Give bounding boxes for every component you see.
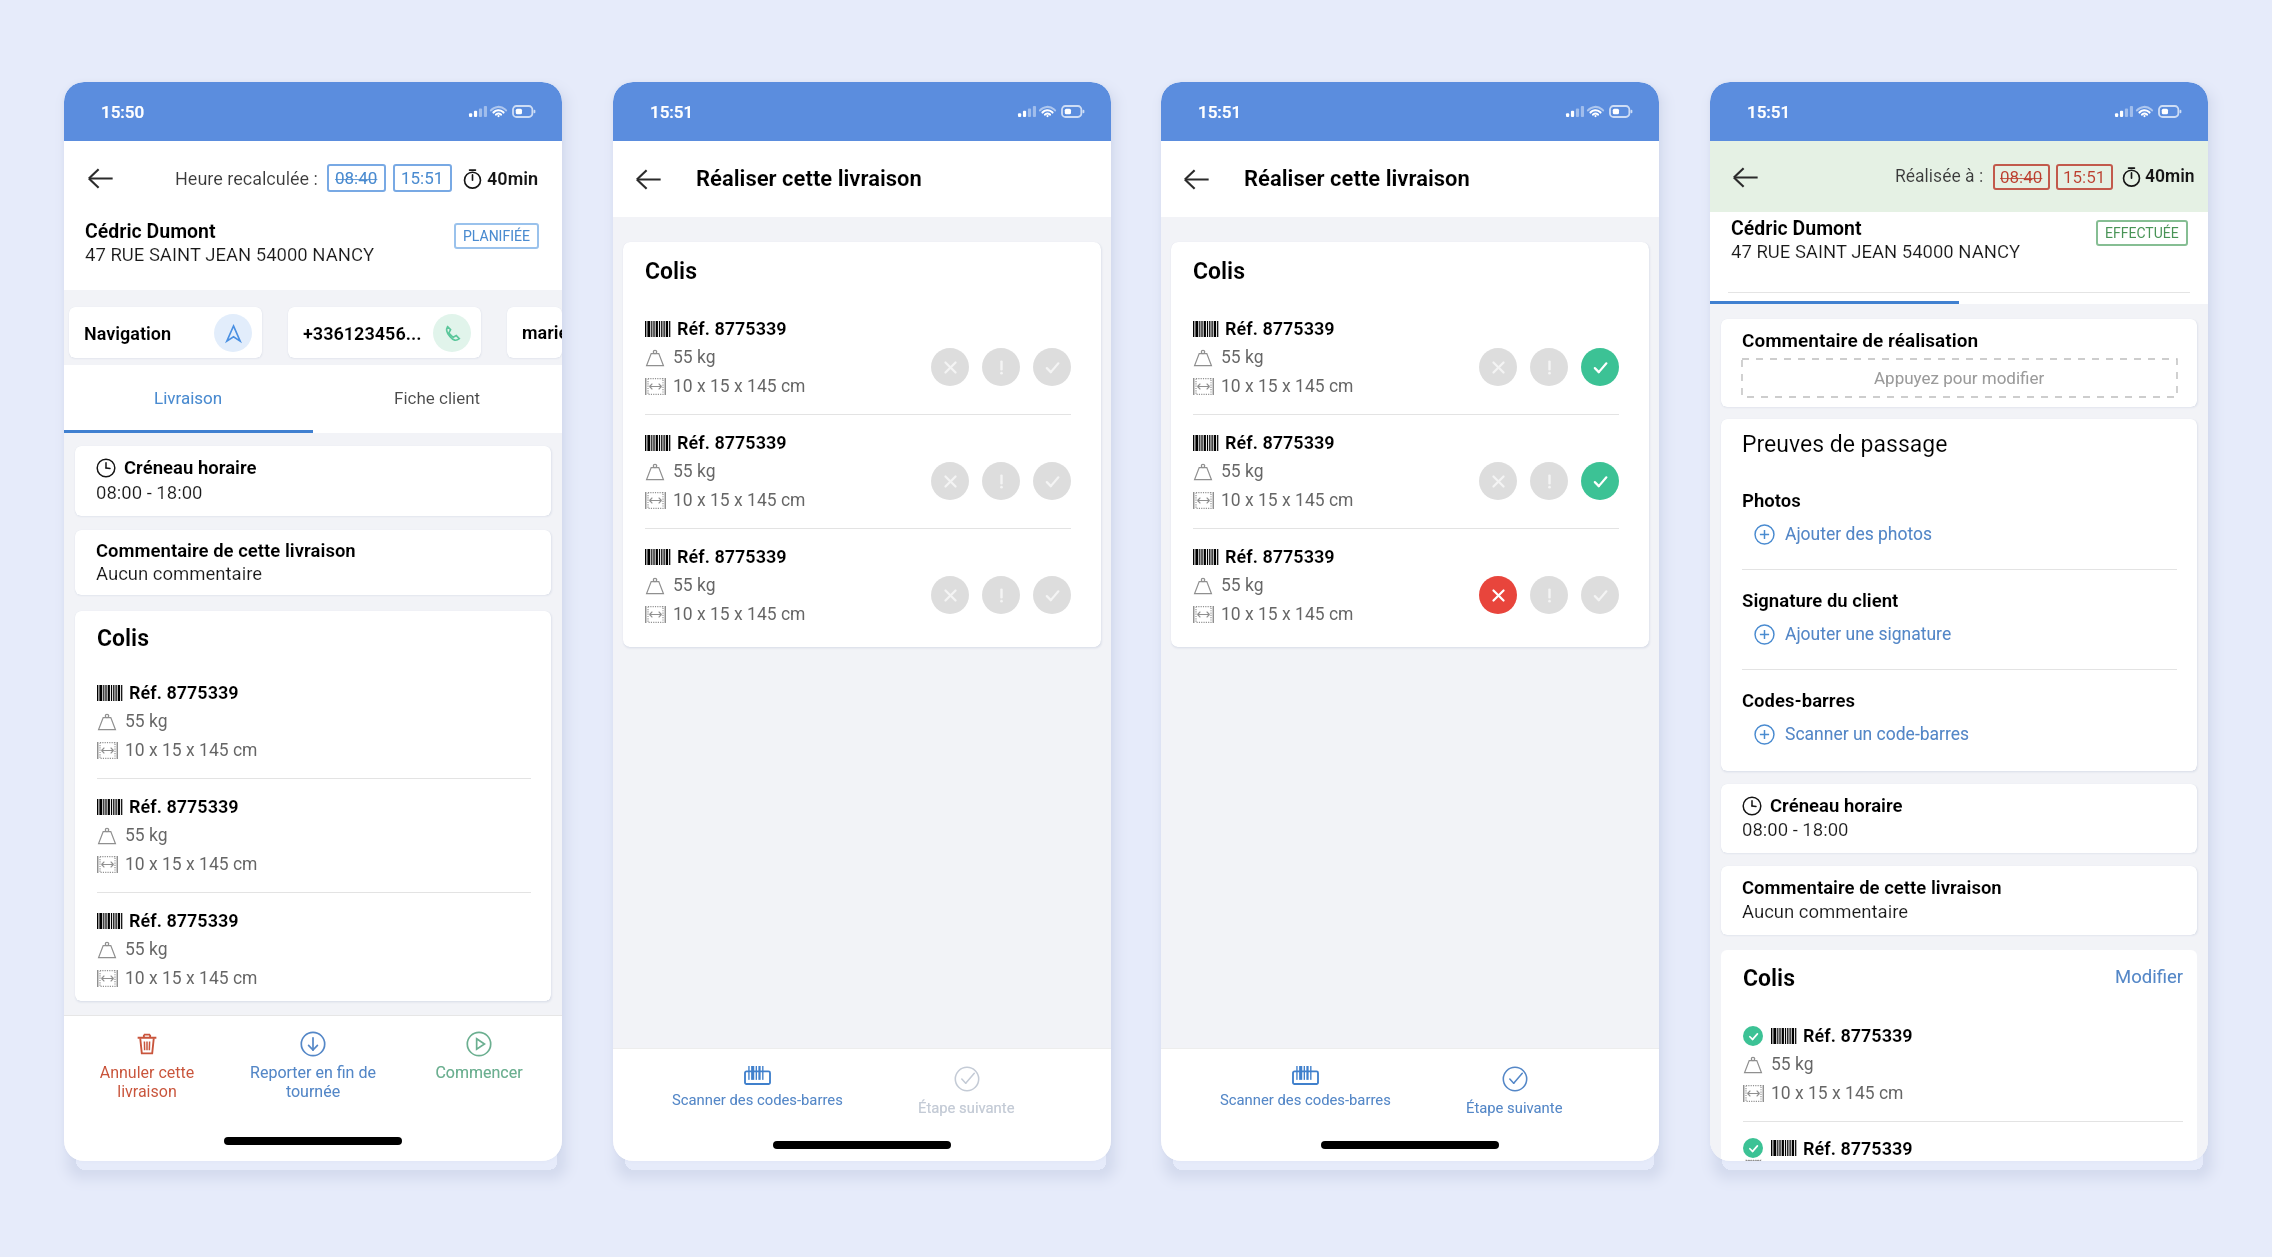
- staticText: Créneau horaire: [1770, 795, 1903, 817]
- button[interactable]: Probleme: [1530, 576, 1568, 614]
- button[interactable]: Navigation: [69, 307, 262, 358]
- staticText: Commencer: [400, 1063, 558, 1082]
- staticText: Ajouter une signature: [1785, 624, 1952, 645]
- staticText: Scanner des codes-barres: [672, 1091, 843, 1108]
- staticText: Réf. 8775339: [677, 432, 787, 453]
- staticText: Navigation: [84, 323, 214, 344]
- button[interactable]: Valider: [1033, 576, 1071, 614]
- button[interactable]: Refuser: [931, 576, 969, 614]
- staticText: 15:51: [650, 102, 694, 122]
- button[interactable]: Scanner des codes-barres: [653, 1066, 862, 1108]
- button[interactable]: Annuler cette livraison: [64, 1031, 230, 1101]
- staticText: EFFECTUÉE: [2105, 225, 2179, 241]
- staticText: 47 RUE SAINT JEAN 54000 NANCY: [85, 244, 375, 266]
- button[interactable]: Refuser: [1479, 348, 1517, 386]
- staticText: Scanner un code-barres: [1785, 724, 1970, 745]
- staticText: 10 x 15 x 145 cm: [1221, 376, 1354, 397]
- button[interactable]: Fiche client: [313, 365, 562, 430]
- button[interactable]: Probleme: [1530, 348, 1568, 386]
- staticText: Créneau horaire: [124, 457, 257, 479]
- button[interactable]: Retour: [625, 156, 671, 202]
- button[interactable]: Probleme: [1530, 462, 1568, 500]
- staticText: Étape suivante: [918, 1099, 1015, 1116]
- button[interactable]: Valider: [1581, 462, 1619, 500]
- staticText: Réf. 8775339: [129, 796, 239, 817]
- staticText: 40min: [2145, 166, 2195, 187]
- button[interactable]: Étape suivante: [1410, 1066, 1619, 1116]
- button[interactable]: Refuser: [931, 348, 969, 386]
- button[interactable]: marie: [507, 307, 562, 358]
- staticText: Réf. 8775339: [1225, 432, 1335, 453]
- button[interactable]: Probleme: [982, 462, 1020, 500]
- staticText: 55 kg: [125, 825, 168, 846]
- staticText: Modifier: [2115, 966, 2183, 988]
- staticText: Colis: [1193, 258, 1246, 285]
- button[interactable]: Scanner des codes-barres: [1201, 1066, 1410, 1108]
- button[interactable]: Retour: [1722, 154, 1768, 200]
- button[interactable]: Refuser: [931, 462, 969, 500]
- staticText: 55 kg: [1771, 1054, 1814, 1075]
- staticText: Reporter en fin de tournée: [234, 1063, 392, 1101]
- staticText: Cédric Dumont: [1731, 217, 1862, 240]
- staticText: 08:00 - 18:00: [96, 482, 203, 504]
- button[interactable]: Valider: [1581, 576, 1619, 614]
- staticText: 55 kg: [1221, 347, 1264, 368]
- button[interactable]: Étape suivante: [862, 1066, 1071, 1116]
- button[interactable]: Refuser: [1479, 462, 1517, 500]
- button[interactable]: Ajouter une signature: [1742, 622, 2177, 647]
- button[interactable]: Reporter en fin de tournée: [230, 1031, 396, 1101]
- button[interactable]: +336123456...: [288, 307, 481, 358]
- staticText: Scanner des codes-barres: [1220, 1091, 1391, 1108]
- staticText: marie: [522, 322, 562, 343]
- staticText: Étape suivante: [1466, 1099, 1563, 1116]
- staticText: Ajouter des photos: [1785, 524, 1933, 545]
- staticText: 55 kg: [673, 347, 716, 368]
- button[interactable]: Livraison: [64, 365, 313, 430]
- button[interactable]: Probleme: [982, 576, 1020, 614]
- staticText: 15:51: [1198, 102, 1242, 122]
- button[interactable]: Retour: [77, 155, 123, 201]
- button[interactable]: Appuyez pour modifier: [1742, 359, 2177, 397]
- staticText: Photos: [1742, 490, 1801, 512]
- button[interactable]: Modifier: [2115, 965, 2183, 988]
- staticText: Commentaire de cette livraison: [1742, 877, 2002, 899]
- button[interactable]: Commencer: [396, 1031, 562, 1082]
- button[interactable]: Valider: [1581, 348, 1619, 386]
- staticText: 40min: [487, 168, 539, 189]
- staticText: 15:50: [101, 102, 145, 122]
- staticText: 10 x 15 x 145 cm: [1771, 1083, 1904, 1104]
- staticText: Commentaire de cette livraison: [96, 540, 356, 562]
- button[interactable]: Refuser: [1479, 576, 1517, 614]
- staticText: 55 kg: [673, 575, 716, 596]
- staticText: +336123456...: [303, 323, 433, 344]
- staticText: Appuyez pour modifier: [1874, 368, 2045, 388]
- staticText: 55 kg: [125, 939, 168, 960]
- staticText: 10 x 15 x 145 cm: [125, 854, 258, 875]
- staticText: Livraison: [154, 388, 223, 408]
- staticText: Colis: [1743, 965, 2115, 992]
- staticText: 15:51: [401, 168, 444, 188]
- staticText: Signature du client: [1742, 590, 1899, 612]
- staticText: 10 x 15 x 145 cm: [1221, 490, 1354, 511]
- staticText: 55 kg: [1221, 461, 1264, 482]
- staticText: 55 kg: [125, 711, 168, 732]
- staticText: Réaliser cette livraison: [1244, 166, 1470, 192]
- staticText: Cédric Dumont: [85, 220, 216, 243]
- staticText: 10 x 15 x 145 cm: [1221, 604, 1354, 625]
- button[interactable]: Valider: [1033, 348, 1071, 386]
- staticText: Réf. 8775339: [677, 318, 787, 339]
- staticText: 10 x 15 x 145 cm: [673, 604, 806, 625]
- staticText: Réalisée à :: [1895, 166, 1984, 187]
- staticText: Fiche client: [394, 388, 481, 408]
- staticText: Commentaire de réalisation: [1742, 329, 1979, 351]
- button[interactable]: Ajouter des photos: [1742, 522, 2177, 547]
- button[interactable]: Probleme: [982, 348, 1020, 386]
- staticText: 10 x 15 x 145 cm: [673, 376, 806, 397]
- staticText: Réf. 8775339: [1803, 1025, 1913, 1046]
- staticText: 47 RUE SAINT JEAN 54000 NANCY: [1731, 241, 2021, 263]
- staticText: 08:40: [2000, 167, 2043, 187]
- button[interactable]: Valider: [1033, 462, 1071, 500]
- button[interactable]: Retour: [1173, 156, 1219, 202]
- staticText: 15:51: [2063, 167, 2106, 187]
- button[interactable]: Scanner un code-barres: [1742, 722, 2177, 747]
